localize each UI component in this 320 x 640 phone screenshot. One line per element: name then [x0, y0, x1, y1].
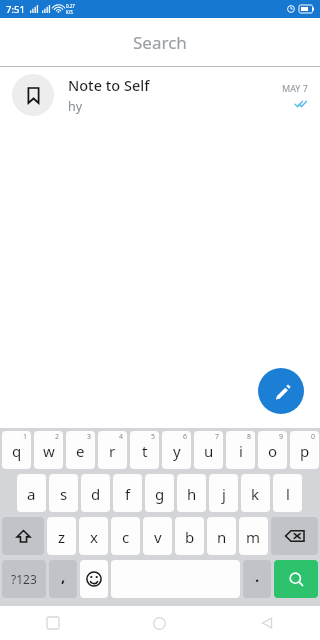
button[interactable]: ?123	[2, 560, 46, 598]
button[interactable]: Search	[274, 560, 318, 598]
staticText: m	[246, 527, 261, 547]
staticText: l	[286, 484, 290, 504]
staticText: p	[300, 441, 310, 461]
button[interactable]: e	[66, 431, 95, 469]
button[interactable]: t	[130, 431, 159, 469]
button[interactable]: .	[243, 560, 271, 598]
staticText: 9	[279, 432, 284, 442]
button[interactable]: New chat	[258, 368, 304, 414]
staticText: 7:51	[6, 3, 25, 16]
staticText: d	[91, 484, 101, 504]
button[interactable]: b	[175, 517, 204, 555]
staticText: g	[155, 484, 165, 504]
staticText: Note to Self	[68, 75, 150, 95]
button[interactable]: Backspace	[271, 517, 318, 555]
button[interactable]: h	[177, 474, 206, 512]
staticText: k	[251, 484, 260, 504]
button[interactable]: Shift	[2, 517, 44, 555]
staticText: 3	[87, 432, 92, 442]
button[interactable]: w	[34, 431, 63, 469]
staticText: 6	[183, 432, 188, 442]
button[interactable]: u	[194, 431, 223, 469]
staticText: h	[187, 484, 197, 504]
button[interactable]: j	[209, 474, 238, 512]
staticText: MAY 7	[282, 82, 308, 94]
button[interactable]: g	[145, 474, 174, 512]
button[interactable]: n	[207, 517, 236, 555]
staticText: 8	[247, 432, 252, 442]
button[interactable]: Emoji	[80, 560, 108, 598]
button[interactable]: v	[143, 517, 172, 555]
button[interactable]: Home	[106, 606, 213, 640]
staticText: n	[217, 527, 227, 547]
button[interactable]: l	[273, 474, 302, 512]
staticText: c	[122, 527, 130, 547]
button[interactable]: d	[81, 474, 110, 512]
button[interactable]: m	[239, 517, 268, 555]
staticText: v	[154, 527, 162, 547]
staticText: a	[27, 484, 36, 504]
staticText: Search	[133, 31, 187, 54]
staticText: z	[58, 527, 66, 547]
button[interactable]: Back	[213, 606, 320, 640]
staticText: 7	[215, 432, 220, 442]
button[interactable]: o	[258, 431, 287, 469]
staticText: y	[173, 441, 181, 461]
staticText: b	[185, 527, 195, 547]
staticText: 2	[55, 432, 60, 442]
staticText: x	[90, 527, 98, 547]
staticText: u	[204, 441, 214, 461]
staticText: ?123	[11, 571, 37, 587]
staticText: w	[43, 441, 55, 461]
staticText: hy	[68, 98, 83, 115]
button[interactable]: k	[241, 474, 270, 512]
staticText: 4	[119, 432, 124, 442]
staticText: s	[60, 484, 68, 504]
staticText: t	[142, 441, 148, 461]
button[interactable]: ,	[49, 560, 77, 598]
staticText: o	[268, 441, 278, 461]
button[interactable]: Note to Self	[0, 67, 320, 123]
staticText: 1	[23, 432, 28, 442]
staticText: j	[222, 484, 226, 504]
staticText: 0	[311, 432, 316, 442]
staticText: r	[109, 441, 116, 461]
button[interactable]: p	[290, 431, 319, 469]
staticText: 0.27	[66, 3, 75, 9]
staticText: ,	[61, 566, 66, 586]
button[interactable]: a	[17, 474, 46, 512]
button[interactable]: s	[49, 474, 78, 512]
staticText: .	[255, 566, 260, 586]
staticText: 5	[151, 432, 156, 442]
button[interactable]: c	[111, 517, 140, 555]
button[interactable]: y	[162, 431, 191, 469]
staticText: q	[12, 441, 22, 461]
button[interactable]: r	[98, 431, 127, 469]
button[interactable]: Recents	[0, 606, 106, 640]
button[interactable]: q	[2, 431, 31, 469]
button[interactable]: Search	[0, 18, 320, 66]
staticText: e	[76, 441, 85, 461]
staticText: K/S	[66, 9, 73, 15]
button[interactable]: i	[226, 431, 255, 469]
staticText: f	[125, 484, 131, 504]
staticText: i	[239, 441, 243, 461]
button[interactable]: f	[113, 474, 142, 512]
button[interactable]: z	[47, 517, 76, 555]
button[interactable]: x	[79, 517, 108, 555]
